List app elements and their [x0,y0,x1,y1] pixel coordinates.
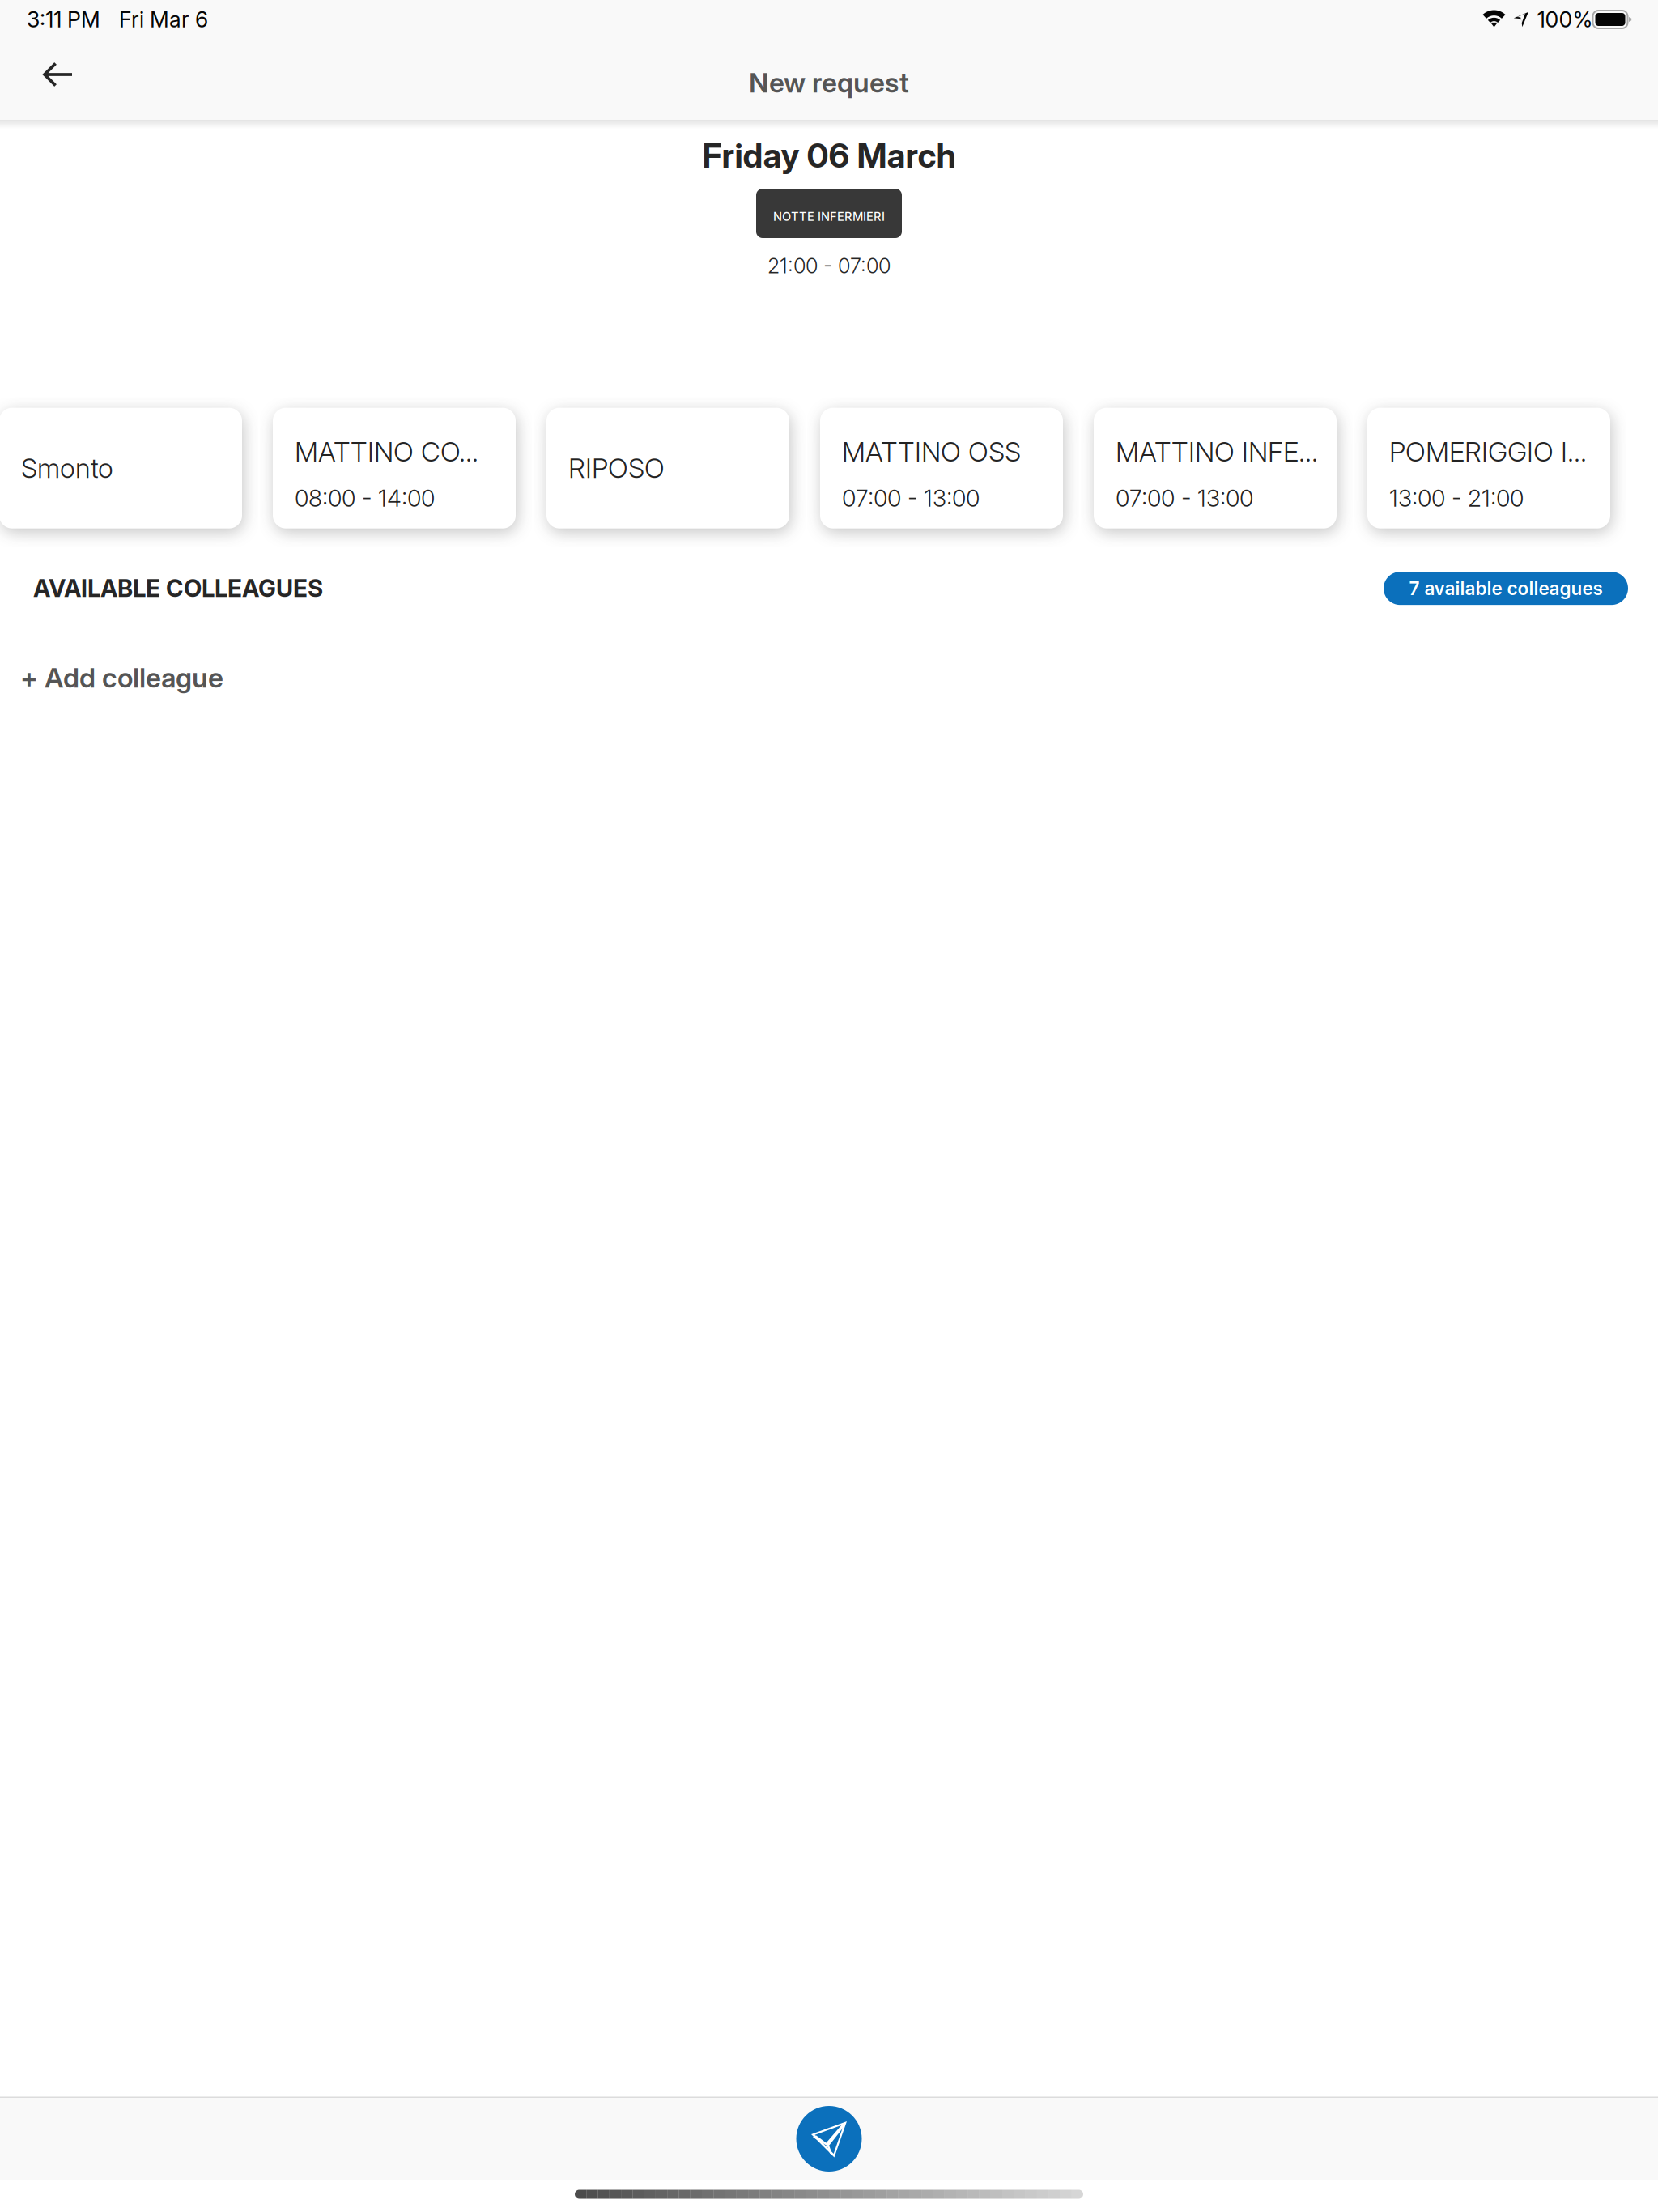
staticText: 07:00 - 13:00 [842,484,980,512]
staticText: 07:00 - 13:00 [1116,484,1253,512]
staticText: 13:00 - 21:00 [1389,484,1524,512]
staticText: MATTINO CO... [295,435,478,468]
button[interactable]: Smonto [0,408,242,528]
staticText: Friday 06 March [702,135,956,176]
button[interactable]: Send request [0,2098,1658,2180]
staticText: + Add colleague [20,661,223,694]
button[interactable]: + Add colleague [0,648,1658,707]
staticText: NOTTE INFERMIERI [773,209,885,224]
button[interactable]: RIPOSO [546,408,789,528]
staticText: New request [749,66,909,99]
staticText: 21:00 - 07:00 [767,253,891,278]
staticText: 3:11 PM [27,6,100,33]
staticText: 08:00 - 14:00 [295,484,435,512]
button[interactable]: NOTTE INFERMIERI [756,189,902,238]
staticText: MATTINO OSS [842,435,1021,468]
staticText: RIPOSO [568,452,665,484]
staticText: AVAILABLE COLLEAGUES [33,574,323,603]
staticText: 7 available colleagues [1409,577,1603,599]
button[interactable]: MATTINO CO... [273,408,516,528]
button[interactable]: MATTINO INFE... [1094,408,1337,528]
staticText: Fri Mar 6 [119,6,208,33]
button[interactable]: Back [0,45,100,120]
staticText: POMERIGGIO I... [1389,435,1587,468]
staticText: 100% [1537,6,1593,33]
button[interactable]: POMERIGGIO I... [1367,408,1610,528]
staticText: Smonto [21,452,113,484]
button[interactable]: MATTINO OSS [820,408,1063,528]
staticText: MATTINO INFE... [1116,435,1318,468]
